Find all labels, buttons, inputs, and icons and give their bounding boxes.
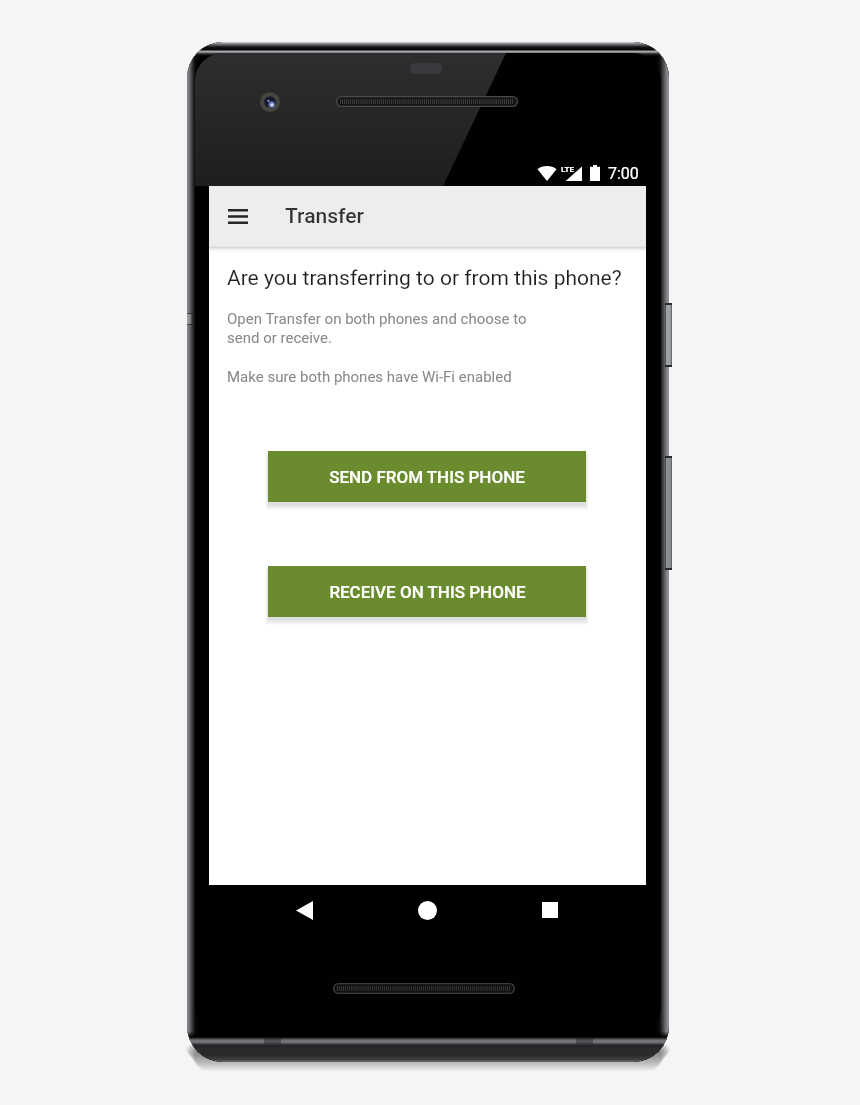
button[interactable]: Back [209,885,400,935]
staticText: 7:00 [608,164,639,183]
staticText: RECEIVE ON THIS PHONE [329,582,526,602]
button[interactable]: Recent apps [454,885,646,935]
staticText: Transfer [285,204,364,229]
staticText: Are you transferring to or from this pho… [227,266,622,291]
button[interactable]: Home [400,885,454,935]
button[interactable]: SEND FROM THIS PHONE [268,451,586,502]
staticText: LTE [561,165,574,174]
staticText: SEND FROM THIS PHONE [329,467,525,487]
staticText: Make sure both phones have Wi-Fi enabled [227,368,512,386]
staticText: Open Transfer on both phones and choose … [227,310,527,346]
button[interactable]: Open navigation menu [209,186,267,246]
button[interactable]: RECEIVE ON THIS PHONE [268,566,586,617]
